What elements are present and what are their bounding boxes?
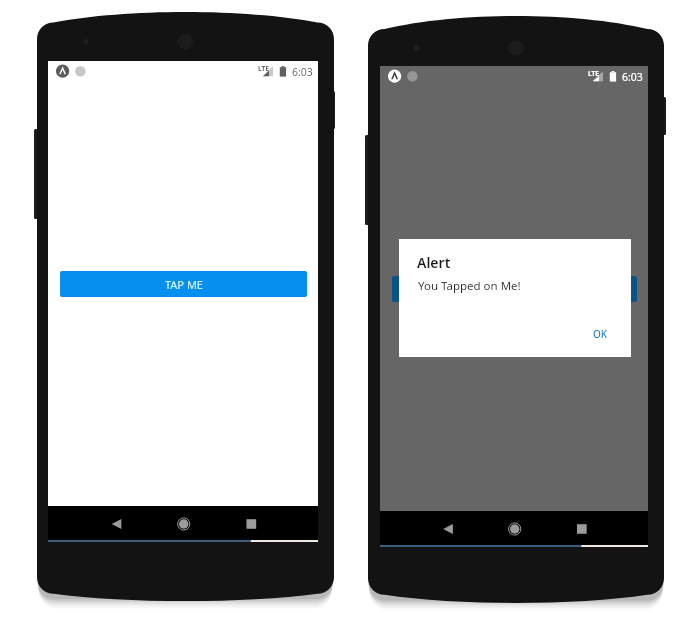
button[interactable]: Home — [469, 511, 558, 545]
staticText: 6:03 — [292, 65, 313, 79]
button[interactable]: TAP ME — [60, 271, 307, 297]
button[interactable]: Recents — [228, 506, 318, 540]
staticText: Alert — [417, 253, 451, 272]
button[interactable] — [392, 276, 637, 302]
staticText: TAP ME — [165, 277, 203, 292]
button[interactable]: Back — [48, 506, 138, 540]
staticText: OK — [593, 327, 608, 341]
button[interactable]: Back — [380, 511, 469, 545]
staticText: LTE — [258, 64, 269, 73]
staticText: You Tapped on Me! — [418, 278, 521, 294]
button[interactable]: Home — [138, 506, 228, 540]
button[interactable]: OK — [579, 321, 619, 347]
staticText: 6:03 — [622, 70, 643, 84]
staticText: LTE — [588, 69, 599, 78]
button[interactable]: Recents — [559, 511, 648, 545]
